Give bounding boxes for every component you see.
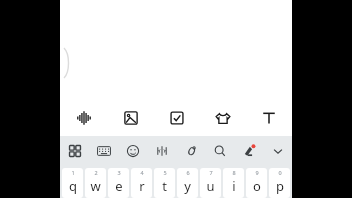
staticText: o <box>253 177 261 195</box>
button[interactable]: 8 <box>223 168 244 198</box>
button[interactable]: 2 <box>85 168 106 198</box>
button[interactable]: Apps <box>60 136 89 166</box>
staticText: 3 <box>117 169 121 176</box>
button[interactable]: 5 <box>154 168 175 198</box>
staticText: 7 <box>209 169 213 176</box>
staticText: 4 <box>140 169 144 176</box>
staticText: q <box>69 177 77 195</box>
button[interactable]: Gallery <box>107 100 154 136</box>
staticText: p <box>276 177 284 195</box>
staticText: 6 <box>186 169 190 176</box>
button[interactable]: Sticker <box>200 100 246 136</box>
staticText: e <box>115 177 123 195</box>
button[interactable]: Clipboard <box>176 136 205 166</box>
staticText: i <box>232 177 236 195</box>
staticText: 8 <box>232 169 236 176</box>
staticText: w <box>90 177 101 195</box>
button[interactable]: Voice message <box>60 100 107 136</box>
button[interactable]: 7 <box>200 168 221 198</box>
staticText: 5 <box>163 169 167 176</box>
button[interactable]: 0 <box>269 168 290 198</box>
button[interactable]: 1 <box>62 168 83 198</box>
staticText: t <box>162 177 167 195</box>
button[interactable]: Poll <box>154 100 200 136</box>
staticText: 0 <box>278 169 282 176</box>
button[interactable]: Settings <box>234 136 263 166</box>
button[interactable]: Keyboard <box>89 136 118 166</box>
staticText: r <box>139 177 145 195</box>
button[interactable]: Search <box>205 136 234 166</box>
button[interactable]: 6 <box>177 168 198 198</box>
button[interactable]: Emoji <box>118 136 147 166</box>
staticText: 9 <box>255 169 259 176</box>
button[interactable]: Resize <box>147 136 176 166</box>
button[interactable]: 3 <box>108 168 129 198</box>
staticText: 1 <box>71 169 75 176</box>
button[interactable]: 4 <box>131 168 152 198</box>
button[interactable]: 9 <box>246 168 267 198</box>
staticText: 2 <box>94 169 98 176</box>
staticText: y <box>184 177 191 195</box>
button[interactable]: Text <box>246 100 292 136</box>
button[interactable]: Collapse <box>263 136 292 166</box>
staticText: u <box>206 177 215 195</box>
